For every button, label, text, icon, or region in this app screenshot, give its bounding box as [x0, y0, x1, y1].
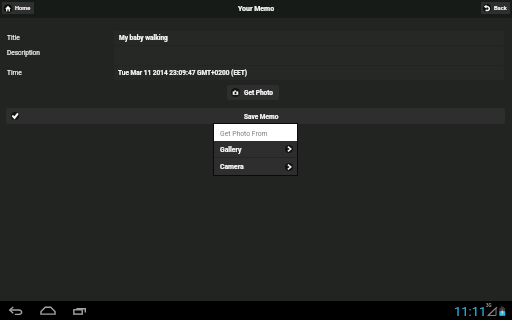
staticText: Get Photo From — [220, 130, 268, 138]
staticText: 3G — [486, 303, 492, 308]
button[interactable]: Camera — [214, 158, 297, 175]
staticText: Home — [15, 5, 31, 12]
staticText: Get Photo — [244, 89, 274, 97]
staticText: Title — [7, 34, 20, 42]
button[interactable]: Back — [6, 301, 25, 320]
button[interactable]: Save Memo — [6, 108, 505, 124]
staticText: My baby walking — [119, 34, 168, 42]
staticText: Your Memo — [0, 5, 512, 13]
button[interactable] — [114, 31, 504, 45]
button[interactable] — [114, 66, 504, 80]
staticText: Camera — [220, 163, 244, 171]
button[interactable]: Back — [481, 2, 510, 14]
staticText: Description — [7, 49, 40, 57]
staticText: 11:11 — [454, 304, 487, 319]
button[interactable]: Home — [2, 2, 34, 14]
staticText: Gallery — [220, 146, 242, 154]
staticText: Time — [7, 69, 22, 77]
button[interactable]: Home — [38, 301, 58, 320]
staticText: Back — [494, 5, 507, 12]
staticText: Tue Mar 11 2014 23:09:47 GMT+0200 (EET) — [118, 69, 248, 77]
button[interactable]: Get Photo — [227, 85, 279, 100]
button[interactable]: Recent apps — [70, 301, 90, 320]
button[interactable]: Gallery — [214, 141, 297, 157]
staticText: Save Memo — [244, 113, 279, 121]
